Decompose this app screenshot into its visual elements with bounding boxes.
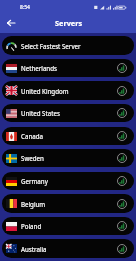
button[interactable]: United Kingdom: [2, 81, 134, 100]
staticText: Sweden: [21, 154, 44, 162]
staticText: Poland: [21, 222, 42, 230]
button[interactable]: United States: [2, 104, 134, 122]
button[interactable]: Germany: [2, 172, 134, 190]
staticText: Germany: [21, 177, 48, 185]
staticText: Netherlands: [21, 64, 57, 72]
staticText: United Kingdom: [21, 87, 69, 95]
staticText: 8:54: [20, 4, 30, 11]
button[interactable]: Belgium: [2, 194, 134, 213]
button[interactable]: Poland: [2, 217, 134, 235]
button[interactable]: Netherlands: [2, 59, 134, 77]
staticText: Canada: [21, 132, 43, 140]
button[interactable]: Sweden: [2, 149, 134, 167]
button[interactable]: Select Fastest Server: [2, 36, 134, 55]
button[interactable]: Back: [3, 15, 19, 31]
button[interactable]: Canada: [2, 127, 134, 145]
staticText: Belgium: [21, 200, 46, 208]
staticText: United States: [21, 109, 60, 117]
staticText: Select Fastest Server: [21, 42, 81, 50]
staticText: Servers: [55, 18, 83, 28]
staticText: Australia: [21, 245, 47, 253]
button[interactable]: Australia: [2, 239, 134, 258]
